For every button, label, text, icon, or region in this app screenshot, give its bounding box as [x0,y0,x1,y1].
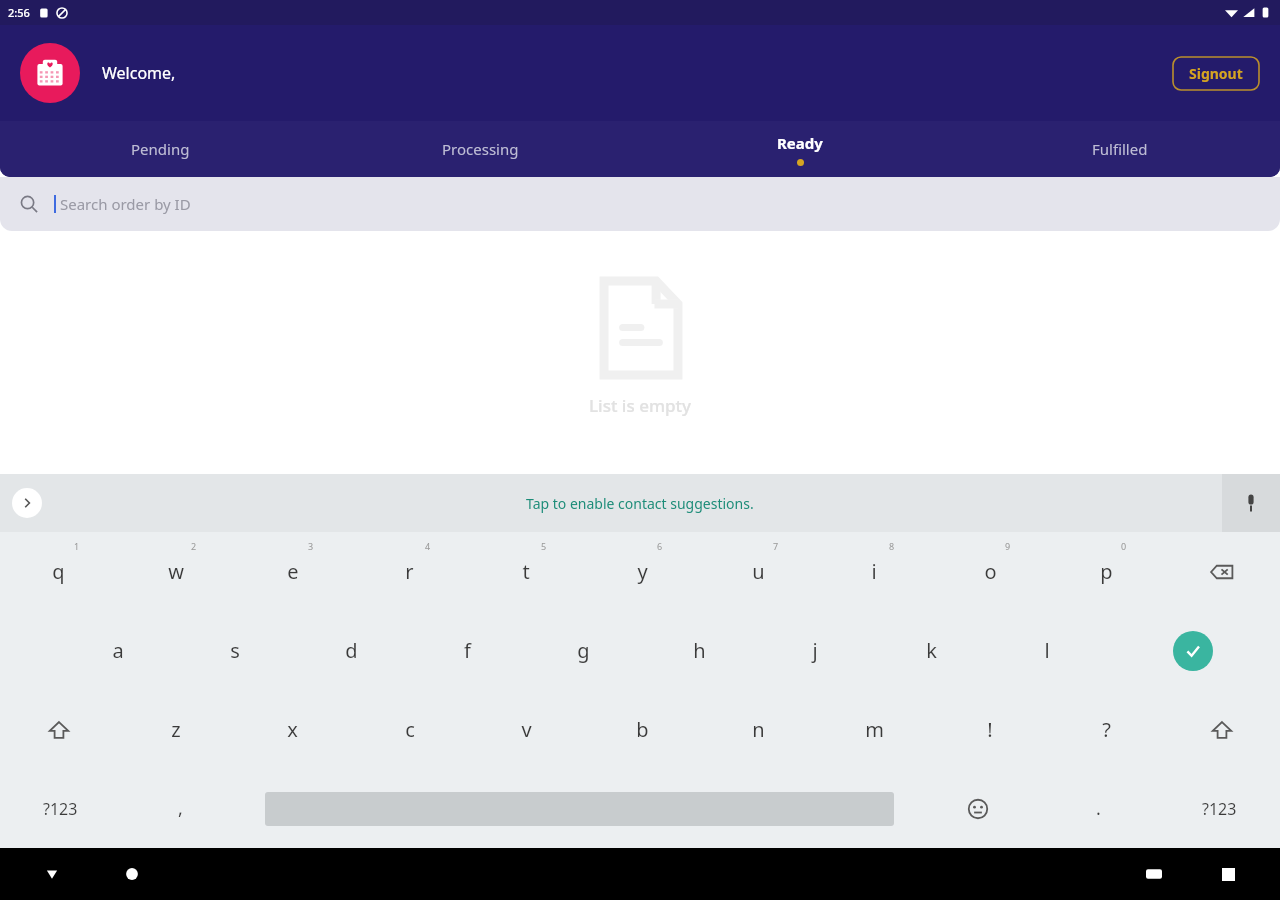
staticText: t [522,558,530,585]
staticText: 6 [657,540,663,552]
button[interactable]: Processing [320,121,640,177]
button[interactable]: Home [114,856,150,892]
button[interactable]: , [120,769,241,848]
button[interactable]: ? [1048,690,1164,769]
staticText: j [812,637,818,664]
staticText: h [693,637,706,664]
staticText: , [178,796,183,821]
staticText: 8 [889,540,895,552]
button[interactable]: Emoji [917,769,1038,848]
button[interactable]: w [117,532,234,611]
staticText: Processing [442,139,519,159]
button[interactable]: Ready [640,121,960,177]
staticText: a [112,637,124,664]
staticText: ?123 [1202,798,1237,820]
staticText: s [230,637,240,664]
staticText: m [865,716,884,743]
staticText: f [464,637,471,664]
staticText: r [405,558,414,585]
button[interactable]: y [584,532,700,611]
staticText: . [1096,796,1101,821]
staticText: 2 [191,540,197,552]
button[interactable]: Shift [0,690,117,769]
button[interactable]: ?123 [0,769,120,848]
button[interactable]: i [816,532,932,611]
staticText: b [636,716,649,743]
button[interactable]: Enter [1105,611,1280,690]
button[interactable]: Signout [1172,56,1260,91]
button[interactable]: e [234,532,351,611]
staticText: w [168,558,184,585]
button[interactable]: m [816,690,932,769]
button[interactable] [20,43,80,103]
staticText: ?123 [43,798,78,820]
button[interactable]: k [873,611,989,690]
button[interactable]: q [0,532,117,611]
staticText: n [752,716,765,743]
button[interactable]: Voice input [1222,474,1280,532]
staticText: 7 [773,540,779,552]
staticText: 3 [308,540,314,552]
button[interactable]: f [409,611,525,690]
button[interactable]: v [468,690,584,769]
button[interactable]: Expand suggestions [12,488,42,518]
staticText: 1 [74,540,80,552]
staticText: v [521,716,532,743]
button[interactable]: p [1048,532,1164,611]
button[interactable]: h [641,611,757,690]
button[interactable]: u [700,532,816,611]
staticText: g [577,637,590,664]
staticText: l [1044,637,1050,664]
staticText: k [926,637,937,664]
button[interactable]: t [468,532,584,611]
button[interactable]: g [525,611,641,690]
staticText: 5 [541,540,547,552]
button[interactable]: b [584,690,700,769]
button[interactable]: Search order by ID [0,177,1280,231]
staticText: 0 [1121,540,1127,552]
staticText: Search order by ID [60,194,191,214]
staticText: d [345,637,358,664]
button[interactable]: Shift [1164,690,1280,769]
button[interactable]: Recent apps [1210,856,1246,892]
button[interactable]: z [117,690,234,769]
staticText: e [287,558,299,585]
button[interactable]: Backspace [1164,532,1280,611]
staticText: x [287,716,298,743]
button[interactable]: l [989,611,1105,690]
button[interactable]: Tap to enable contact suggestions. [526,494,754,513]
staticText: 2:56 [8,5,30,20]
staticText: Ready [777,133,823,153]
button[interactable]: s [176,611,293,690]
button[interactable]: j [757,611,873,690]
staticText: Signout [1189,64,1243,83]
button[interactable]: Back [34,856,70,892]
button[interactable]: x [234,690,351,769]
staticText: Welcome, [102,62,176,84]
staticText: z [171,716,181,743]
staticText: y [637,558,648,585]
staticText: Fulfilled [1092,139,1148,159]
button[interactable]: ! [932,690,1048,769]
button[interactable]: a [59,611,176,690]
staticText: i [871,558,877,585]
staticText: Pending [131,139,190,159]
button[interactable]: ?123 [1159,769,1280,848]
button[interactable]: Fulfilled [960,121,1280,177]
button[interactable]: Pending [0,121,320,177]
button[interactable]: n [700,690,816,769]
button[interactable]: r [351,532,468,611]
staticText: ? [1102,716,1111,743]
button[interactable]: d [293,611,409,690]
staticText: p [1100,558,1113,585]
button[interactable]: o [932,532,1048,611]
button[interactable]: Space [241,769,917,848]
staticText: List is empty [589,394,692,417]
button[interactable]: c [351,690,468,769]
button[interactable]: Keyboard [1136,856,1172,892]
staticText: ! [987,716,993,743]
staticText: o [984,558,997,585]
staticText: u [752,558,765,585]
staticText: 9 [1005,540,1011,552]
